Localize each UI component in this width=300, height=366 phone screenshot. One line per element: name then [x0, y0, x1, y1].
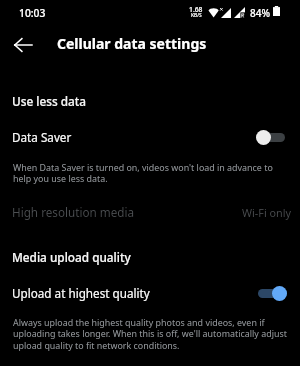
staticText: Always upload the highest quality photos… [13, 316, 290, 352]
button[interactable]: Upload at highest quality [0, 274, 300, 312]
staticText: Wi-Fi only [242, 205, 291, 220]
staticText: Data Saver [12, 129, 256, 145]
staticText: Use less data [12, 93, 87, 109]
button[interactable]: Data Saver [0, 118, 300, 156]
button[interactable]: Back [0, 22, 46, 68]
staticText: 1.68 [189, 5, 203, 14]
staticText: High resolution media [12, 204, 242, 220]
staticText: Cellular data settings [57, 34, 207, 53]
staticText: 84% [250, 6, 270, 20]
staticText: Upload at highest quality [12, 285, 258, 301]
staticText: When Data Saver is turned on, videos won… [13, 161, 290, 185]
staticText: Media upload quality [12, 249, 131, 265]
staticText: KB/S [191, 12, 202, 19]
staticText: 10:03 [19, 6, 46, 20]
button[interactable]: High resolution media [0, 193, 300, 231]
